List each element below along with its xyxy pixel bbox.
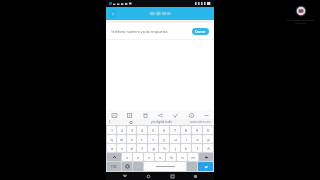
staticText: s <box>121 146 123 151</box>
button[interactable]: Cerrar <box>192 28 209 35</box>
staticText: i <box>186 137 187 142</box>
staticText: u <box>174 137 177 142</box>
button[interactable]: Gallery <box>110 111 118 119</box>
staticText: q <box>110 137 113 142</box>
button[interactable]: b <box>166 153 176 161</box>
staticText: 0 <box>207 128 209 133</box>
button[interactable]: y <box>159 135 169 143</box>
button[interactable]: 1 <box>107 126 116 134</box>
staticText: ñ <box>207 146 210 151</box>
button[interactable]: Teléfono numero ya da respuesta <box>106 23 214 39</box>
button[interactable]: App logo <box>147 9 173 18</box>
button[interactable]: q <box>107 135 116 143</box>
button[interactable]: , <box>133 162 143 171</box>
staticText: 3 <box>131 128 133 133</box>
staticText: d <box>130 146 133 151</box>
button[interactable]: e <box>127 135 136 143</box>
staticText: x <box>137 155 139 160</box>
button[interactable]: s <box>117 144 126 152</box>
button[interactable]: o <box>192 135 202 143</box>
staticText: l <box>197 146 198 151</box>
button[interactable]: g <box>148 144 158 152</box>
staticText: 1 <box>111 128 113 133</box>
staticText: n <box>181 155 184 160</box>
button[interactable]: Emoji <box>129 121 133 124</box>
button[interactable]: Delete <box>141 111 149 119</box>
button[interactable]: 5 <box>148 126 158 134</box>
button[interactable]: Menu <box>108 9 117 18</box>
button[interactable]: ñ <box>203 144 213 152</box>
button[interactable]: Share <box>156 111 164 119</box>
staticText: y <box>163 137 165 142</box>
button[interactable]: Enter <box>198 162 213 171</box>
button[interactable]: Recents <box>168 172 176 180</box>
button[interactable]: v <box>155 153 165 161</box>
button[interactable]: u <box>170 135 180 143</box>
staticText: OFFICIAL <box>295 21 306 24</box>
button[interactable]: 3 <box>127 126 136 134</box>
button[interactable]: Emoji <box>122 162 132 171</box>
button[interactable]: www.video.com <box>190 120 211 124</box>
button[interactable]: l <box>192 144 202 152</box>
staticText: h <box>163 146 166 151</box>
button[interactable]: d <box>127 144 136 152</box>
button[interactable]: 4 <box>137 126 147 134</box>
button[interactable]: Backspace <box>199 153 213 161</box>
staticText: p <box>207 137 210 142</box>
staticText: o <box>196 137 199 142</box>
staticText: j <box>175 146 176 151</box>
staticText: 2 <box>121 128 123 133</box>
button[interactable]: t <box>148 135 158 143</box>
staticText: g <box>152 146 155 151</box>
staticText: a <box>111 146 113 151</box>
button[interactable]: r <box>137 135 147 143</box>
button[interactable]: 7 <box>170 126 180 134</box>
button[interactable]: m <box>188 153 198 161</box>
button[interactable]: 6 <box>159 126 169 134</box>
staticText: b <box>170 155 173 160</box>
button[interactable]: Info <box>187 111 195 119</box>
button[interactable]: k <box>181 144 191 152</box>
button[interactable]: Space <box>144 162 186 171</box>
button[interactable]: Send <box>171 111 179 119</box>
staticText: k <box>185 146 187 151</box>
staticText: 7 <box>174 128 176 133</box>
button[interactable]: a <box>107 144 116 152</box>
button[interactable]: 0 <box>203 126 213 134</box>
button[interactable]: Back <box>121 172 129 180</box>
button[interactable]: p <box>203 135 213 143</box>
button[interactable]: z <box>122 153 132 161</box>
button[interactable]: c <box>144 153 154 161</box>
staticText: f <box>141 146 143 151</box>
button[interactable]: I <box>109 120 111 124</box>
button[interactable]: 8 <box>181 126 191 134</box>
staticText: v <box>159 155 161 160</box>
button[interactable]: yes.digital.mobi <box>151 120 172 124</box>
button[interactable]: n <box>177 153 187 161</box>
button[interactable]: More <box>202 111 210 119</box>
button[interactable]: 2 <box>117 126 126 134</box>
button[interactable]: 9 <box>192 126 202 134</box>
staticText: m <box>191 155 195 160</box>
button[interactable]: ?123 <box>107 162 121 171</box>
button[interactable]: h <box>159 144 169 152</box>
staticText: 8 <box>185 128 187 133</box>
staticText: ?123 <box>111 165 117 169</box>
button[interactable]: Shift <box>107 153 121 161</box>
staticText: , <box>138 165 139 169</box>
staticText: 5 <box>152 128 154 133</box>
staticText: Teléfono numero ya da respuesta <box>111 29 189 34</box>
staticText: w <box>120 137 123 142</box>
staticText: Cerrar <box>195 29 206 34</box>
staticText: 6 <box>163 128 165 133</box>
button[interactable]: Menu <box>191 172 199 180</box>
button[interactable]: f <box>137 144 147 152</box>
staticText: e <box>131 137 133 142</box>
button[interactable]: Sticker <box>125 111 133 119</box>
button[interactable]: i <box>181 135 191 143</box>
button[interactable]: Home <box>144 172 152 180</box>
button[interactable]: x <box>133 153 143 161</box>
button[interactable]: w <box>117 135 126 143</box>
button[interactable]: j <box>170 144 180 152</box>
